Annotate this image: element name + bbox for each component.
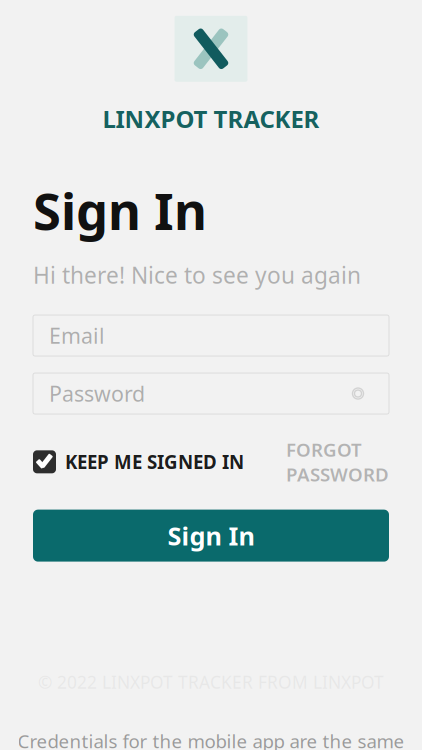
staticText: Password [49,379,145,408]
staticText: Email [49,321,105,350]
staticText: LINXPOT TRACKER [102,103,319,135]
button[interactable]: Sign In [33,510,389,562]
staticText: Sign In [33,177,207,244]
staticText: © 2022 LINXPOT TRACKER FROM LINXPOT [38,671,384,694]
staticText: Sign In [167,519,254,552]
staticText: Credentials for the mobile app are the s… [17,729,404,750]
button[interactable]: KEEP ME SIGNED IN [33,445,244,478]
staticText: FORGOT PASSWORD [286,437,389,487]
staticText: Hi there! Nice to see you again [33,260,361,290]
button[interactable]: Show password [343,378,373,408]
button[interactable]: FORGOT PASSWORD [286,433,389,491]
staticText: KEEP ME SIGNED IN [65,449,244,474]
